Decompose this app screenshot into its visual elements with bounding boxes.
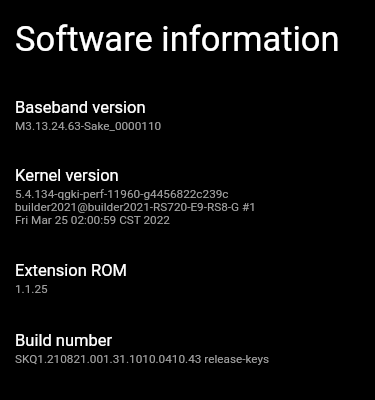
button[interactable]: Build number [0,325,375,377]
staticText: 1.1.25 [15,282,48,296]
staticText: M3.13.24.63-Sake_0000110 [15,119,162,133]
button[interactable]: Extension ROM [0,255,375,307]
staticText: Software information [15,19,340,59]
staticText: SKQ1.210821.001.31.1010.0410.43 release-… [15,352,270,366]
staticText: Baseband version [15,98,146,117]
staticText: Extension ROM [15,261,127,280]
staticText: Build number [15,331,113,350]
button[interactable]: Baseband version [0,92,375,144]
button[interactable]: Kernel version [0,160,375,238]
staticText: Kernel version [15,166,119,185]
staticText: 5.4.134-qgki-perf-11960-g4456822c239c bu… [15,187,256,227]
